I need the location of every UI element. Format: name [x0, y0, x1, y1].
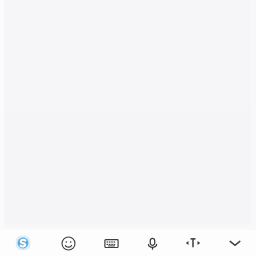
button[interactable]: Collapse — [214, 230, 256, 256]
button[interactable]: Skype — [0, 230, 46, 256]
button[interactable]: Text size — [172, 230, 214, 256]
button[interactable]: Emoji — [46, 230, 90, 256]
button[interactable]: Keyboard — [90, 230, 132, 256]
button[interactable]: Voice input — [132, 230, 172, 256]
